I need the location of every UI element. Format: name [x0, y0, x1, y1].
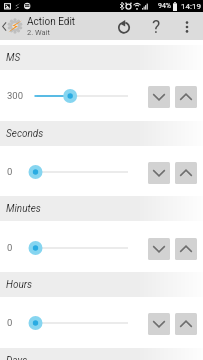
- staticText: Hours: [6, 279, 33, 291]
- button[interactable]: Slider: [28, 86, 132, 106]
- button[interactable]: Decrease: [148, 162, 170, 184]
- button[interactable]: Decrease: [148, 238, 170, 260]
- staticText: Days: [6, 355, 28, 360]
- button[interactable]: Slider: [28, 313, 132, 333]
- staticText: 0: [7, 166, 13, 177]
- staticText: 14:19: [181, 2, 201, 11]
- staticText: 0: [7, 242, 13, 253]
- staticText: Seconds: [6, 128, 44, 140]
- staticText: ?: [152, 17, 161, 38]
- button[interactable]: Back: [0, 12, 9, 40]
- button[interactable]: Increase: [175, 238, 197, 260]
- staticText: 300: [7, 90, 24, 101]
- button[interactable]: Increase: [175, 162, 197, 184]
- button[interactable]: Increase: [175, 313, 197, 335]
- button[interactable]: More options: [178, 13, 196, 41]
- staticText: Action Edit: [27, 16, 76, 28]
- staticText: 94%: [158, 2, 171, 10]
- button[interactable]: Slider: [28, 162, 132, 182]
- staticText: MS: [6, 52, 21, 64]
- button[interactable]: Decrease: [148, 86, 170, 108]
- button[interactable]: Slider: [28, 238, 132, 258]
- button[interactable]: Increase: [175, 86, 197, 108]
- button[interactable]: Reset: [113, 13, 135, 41]
- button[interactable]: Decrease: [148, 313, 170, 335]
- staticText: 2. Wait: [27, 28, 50, 37]
- staticText: Minutes: [6, 203, 41, 215]
- button[interactable]: Help: [146, 13, 167, 41]
- staticText: 0: [7, 317, 13, 328]
